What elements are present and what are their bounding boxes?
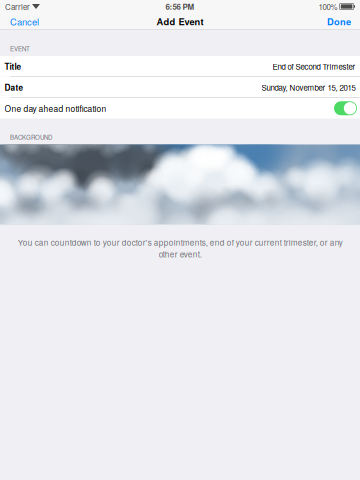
button[interactable]: Cancel (0, 13, 49, 30)
staticText: Add Event (156, 15, 203, 28)
staticText: Date (4, 81, 23, 93)
staticText: BACKGROUND (10, 133, 52, 141)
staticText: 100% (319, 1, 338, 12)
staticText: You can countdown to your doctor's appoi… (17, 236, 342, 260)
staticText: Carrier (5, 1, 30, 12)
button[interactable]: Title (0, 56, 360, 76)
button[interactable]: Done (318, 13, 360, 30)
staticText: EVENT (10, 44, 30, 53)
button[interactable]: One day ahead notification (334, 101, 357, 115)
staticText: Cancel (10, 15, 39, 28)
button[interactable]: Date (0, 77, 360, 97)
staticText: Done (327, 15, 351, 28)
staticText: Sunday, November 15, 2015 (261, 82, 355, 93)
staticText: End of Second Trimester (272, 61, 355, 72)
staticText: Title (4, 60, 21, 72)
staticText: One day ahead notification (4, 102, 106, 114)
staticText: 6:56 PM (165, 1, 194, 12)
